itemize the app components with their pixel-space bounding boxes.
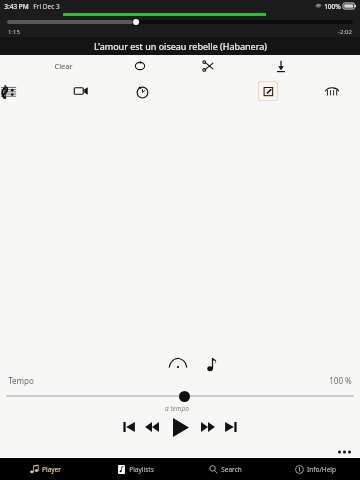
button[interactable]: Skip to start [119,417,139,437]
button[interactable]: Note value [203,355,221,373]
button[interactable]: Annotate [258,81,278,101]
staticText: Clear [54,61,73,71]
staticText: Search [221,465,242,474]
button[interactable]: Loop [130,56,150,76]
staticText: 1:15 [8,28,20,36]
button[interactable]: Chords [321,80,343,102]
button[interactable]: Cut [199,56,219,76]
button[interactable]: Info/Help [270,458,360,480]
button[interactable]: Rewind [142,417,162,437]
staticText: Player [42,465,61,474]
staticText: 100% [324,2,341,11]
button[interactable]: Fast forward [198,417,218,437]
staticText: -2:02 [338,28,352,36]
staticText: Playlists [129,465,154,474]
button[interactable]: Skip to end [221,417,241,437]
button[interactable]: Metronome [132,81,153,102]
button[interactable]: Clear [50,59,77,73]
button[interactable] [0,389,360,403]
button[interactable] [0,17,360,26]
button[interactable]: Search [180,458,270,480]
button[interactable]: Playlists [90,458,180,480]
button[interactable]: Sheet music [0,80,17,103]
button[interactable]: Download [271,56,291,76]
staticText: Tempo [8,375,34,386]
button[interactable]: More options [334,446,354,458]
button[interactable]: Play [167,414,193,440]
button[interactable]: Fermata [167,353,189,375]
staticText: Fri Dec 3 [33,2,60,11]
staticText: a tempo [165,404,189,413]
staticText: L'amour est un oiseau rebelle (Habanera) [94,40,267,52]
button[interactable]: Video [70,80,92,102]
staticText: 3:43 PM [4,2,29,11]
staticText: Info/Help [307,465,336,474]
button[interactable]: Player [0,458,90,480]
staticText: 100 % [329,375,352,386]
